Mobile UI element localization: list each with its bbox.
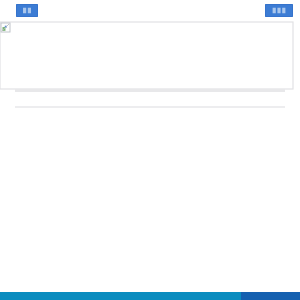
other: Broken image placeholder <box>1 23 10 32</box>
button[interactable]: Broken image placeholder <box>0 22 293 89</box>
button[interactable]: Left action <box>16 4 38 17</box>
button[interactable]: Right action <box>265 4 293 17</box>
